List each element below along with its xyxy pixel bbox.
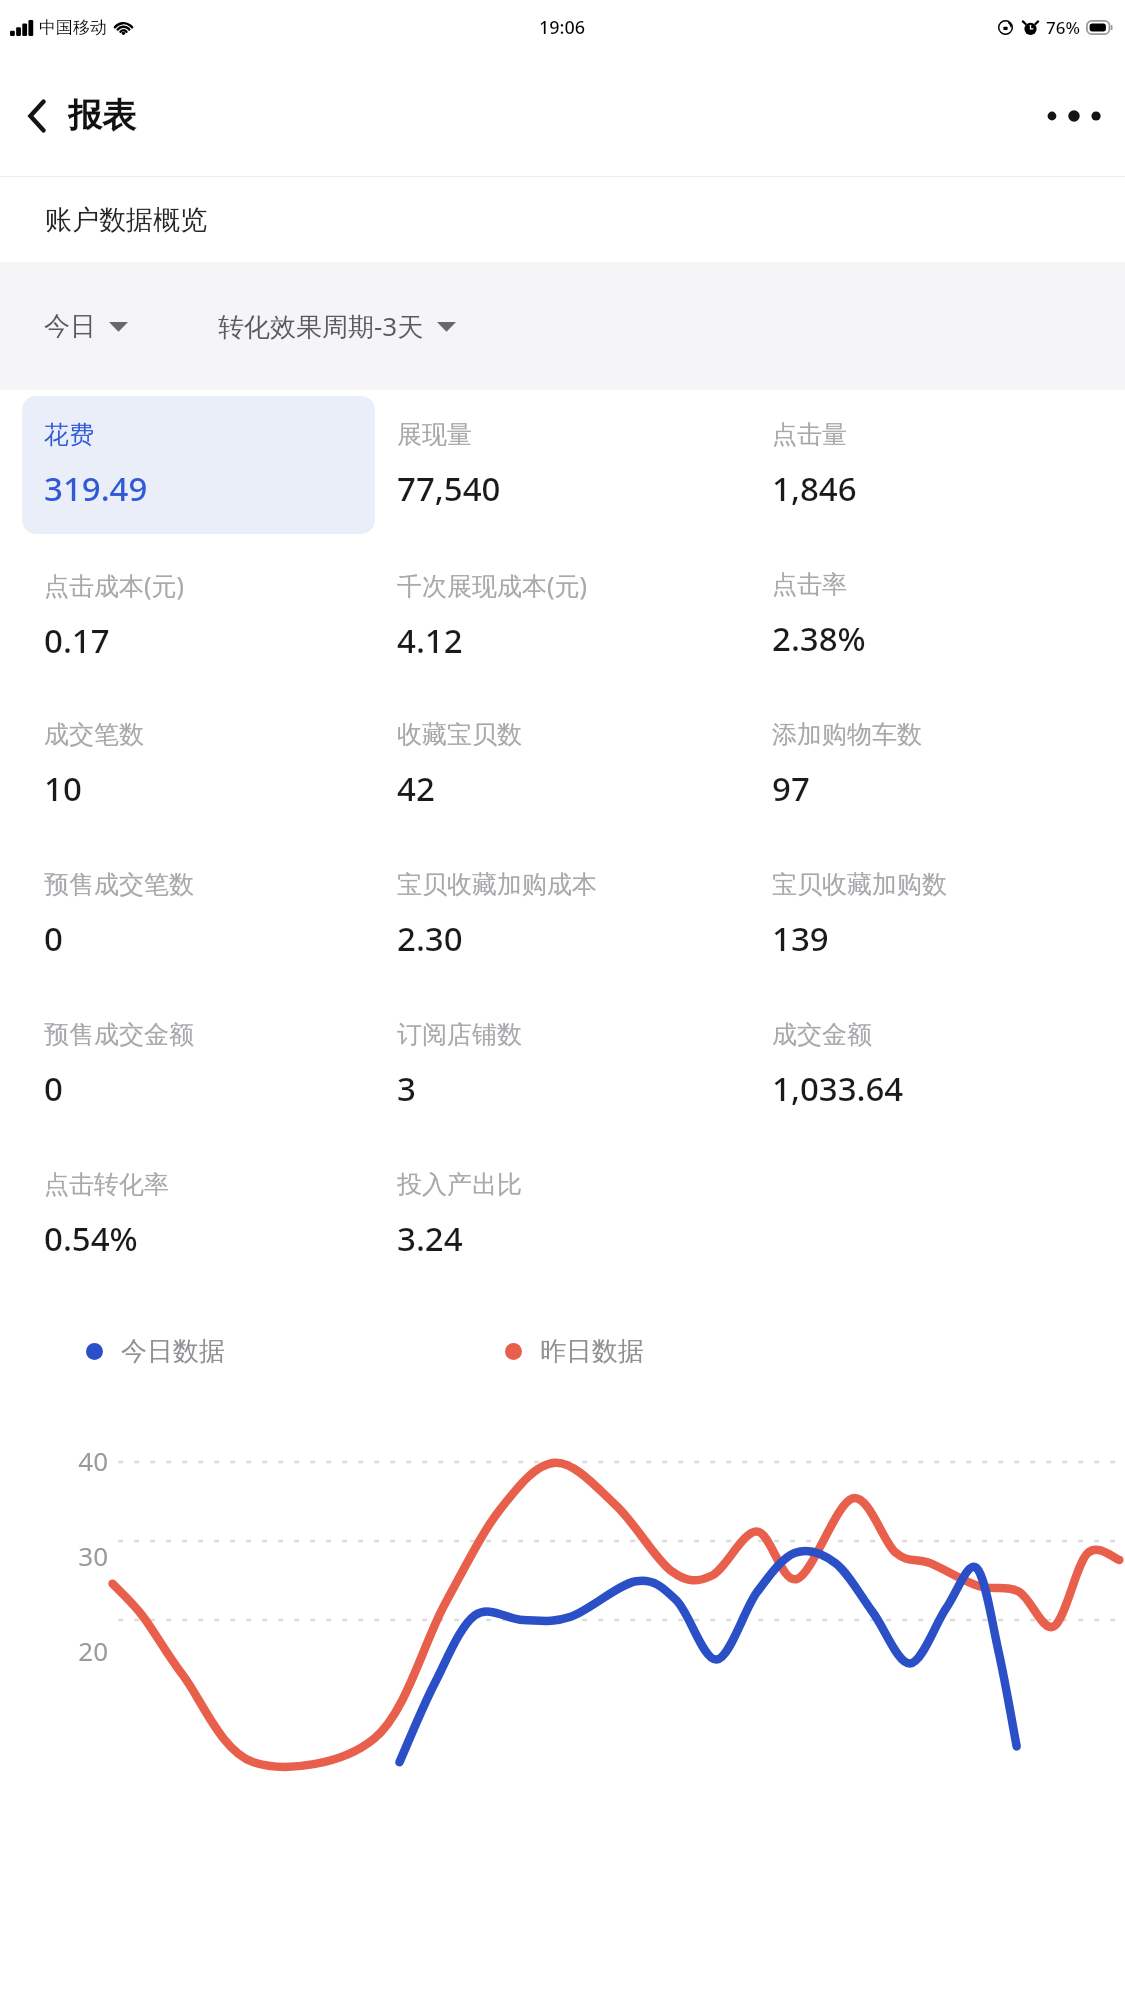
staticText: 20 bbox=[0, 1633, 108, 1668]
button[interactable]: 展现量 bbox=[375, 390, 750, 540]
staticText: 花费 bbox=[44, 419, 94, 450]
staticText: 0.54% bbox=[44, 1216, 138, 1261]
staticText: 42 bbox=[397, 766, 435, 811]
staticText: 账户数据概览 bbox=[45, 203, 207, 237]
staticText: 今日数据 bbox=[121, 1335, 225, 1368]
staticText: 投入产出比 bbox=[397, 1169, 522, 1200]
staticText: 1,846 bbox=[772, 466, 857, 511]
other: Back bbox=[26, 97, 48, 135]
button[interactable]: More options bbox=[1023, 88, 1125, 144]
staticText: 2.30 bbox=[397, 916, 463, 961]
staticText: 收藏宝贝数 bbox=[397, 719, 522, 750]
staticText: 0 bbox=[44, 1066, 63, 1111]
staticText: 30 bbox=[0, 1538, 108, 1573]
staticText: 10 bbox=[44, 766, 82, 811]
staticText: 点击率 bbox=[772, 569, 847, 600]
staticText: 点击转化率 bbox=[44, 1169, 169, 1200]
staticText: 2.38% bbox=[772, 616, 866, 661]
button[interactable]: 转化效果周期-3天 bbox=[216, 296, 458, 356]
staticText: 昨日数据 bbox=[540, 1335, 644, 1368]
button[interactable]: 预售成交金额 bbox=[22, 990, 375, 1140]
button[interactable]: Back bbox=[0, 84, 156, 147]
staticText: 预售成交金额 bbox=[44, 1019, 194, 1050]
staticText: 成交金额 bbox=[772, 1019, 872, 1050]
staticText: 4.12 bbox=[397, 618, 463, 663]
staticText: 点击量 bbox=[772, 419, 847, 450]
button[interactable]: 账户数据概览 bbox=[0, 177, 1125, 262]
staticText: 中国移动 bbox=[39, 17, 107, 38]
staticText: 1,033.64 bbox=[772, 1066, 904, 1111]
button[interactable]: 添加购物车数 bbox=[750, 690, 1113, 840]
button[interactable]: 订阅店铺数 bbox=[375, 990, 750, 1140]
button[interactable]: 花费 bbox=[22, 396, 375, 534]
staticText: 添加购物车数 bbox=[772, 719, 922, 750]
staticText: 点击成本(元) bbox=[44, 568, 185, 602]
button[interactable]: 成交笔数 bbox=[22, 690, 375, 840]
button[interactable]: 点击转化率 bbox=[22, 1140, 375, 1290]
staticText: 0.17 bbox=[44, 618, 110, 663]
button[interactable]: 收藏宝贝数 bbox=[375, 690, 750, 840]
button[interactable]: 宝贝收藏加购成本 bbox=[375, 840, 750, 990]
button[interactable]: 今日 bbox=[42, 298, 130, 355]
button[interactable]: 千次展现成本(元) bbox=[375, 540, 750, 690]
button[interactable]: 昨日数据 bbox=[505, 1325, 644, 1378]
button[interactable]: 预售成交笔数 bbox=[22, 840, 375, 990]
staticText: 报表 bbox=[68, 94, 136, 137]
button[interactable]: 点击率 bbox=[750, 540, 1113, 690]
staticText: 3.24 bbox=[397, 1216, 463, 1261]
button[interactable]: 投入产出比 bbox=[375, 1140, 750, 1290]
staticText: 预售成交笔数 bbox=[44, 869, 194, 900]
staticText: 订阅店铺数 bbox=[397, 1019, 522, 1050]
staticText: 77,540 bbox=[397, 466, 501, 511]
staticText: 19:06 bbox=[539, 15, 586, 40]
staticText: 今日 bbox=[44, 310, 96, 343]
button[interactable]: 点击量 bbox=[750, 390, 1113, 540]
staticText: 展现量 bbox=[397, 419, 472, 450]
button[interactable]: 成交金额 bbox=[750, 990, 1113, 1140]
button[interactable]: 宝贝收藏加购数 bbox=[750, 840, 1113, 990]
staticText: 宝贝收藏加购成本 bbox=[397, 869, 597, 900]
staticText: 76% bbox=[1046, 16, 1080, 39]
staticText: 40 bbox=[0, 1443, 108, 1478]
staticText: 3 bbox=[397, 1066, 416, 1111]
staticText: 宝贝收藏加购数 bbox=[772, 869, 947, 900]
staticText: 0 bbox=[44, 916, 63, 961]
staticText: 成交笔数 bbox=[44, 719, 144, 750]
staticText: 97 bbox=[772, 766, 810, 811]
staticText: 139 bbox=[772, 916, 829, 961]
staticText: 千次展现成本(元) bbox=[397, 568, 588, 602]
button[interactable]: 点击成本(元) bbox=[22, 540, 375, 690]
staticText: 转化效果周期-3天 bbox=[218, 308, 424, 344]
button[interactable]: 今日数据 bbox=[86, 1325, 225, 1378]
staticText: 319.49 bbox=[44, 466, 148, 511]
